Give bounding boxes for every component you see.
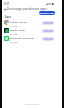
staticText: 41.7 MB xyxy=(10,41,18,44)
button[interactable]: Instalar xyxy=(42,29,54,33)
staticText: WhatsApp Messenger xyxy=(10,37,34,40)
staticText: Actualizar todo xyxy=(39,12,55,15)
staticText: Apps xyxy=(5,15,12,19)
staticText: Instalar xyxy=(43,37,54,41)
button[interactable]: Actualizar todo xyxy=(39,11,55,15)
button[interactable]: Instalar xyxy=(42,21,54,25)
staticText: 9:41 xyxy=(4,2,10,6)
button[interactable] xyxy=(3,19,57,27)
staticText: Google Chrome xyxy=(10,21,28,24)
staticText: Spotify: Music xyxy=(10,29,26,32)
button[interactable] xyxy=(3,35,57,43)
staticText: 12.4 MB xyxy=(10,25,18,28)
staticText: Instalar xyxy=(43,29,54,33)
button[interactable]: Instalar xyxy=(42,37,54,41)
staticText: 28.1 MB xyxy=(10,33,18,36)
button[interactable]: Back xyxy=(3,7,7,11)
staticText: Instalar xyxy=(43,21,54,25)
staticText: Descargas pendientes apps xyxy=(7,7,47,11)
button[interactable] xyxy=(3,27,57,35)
